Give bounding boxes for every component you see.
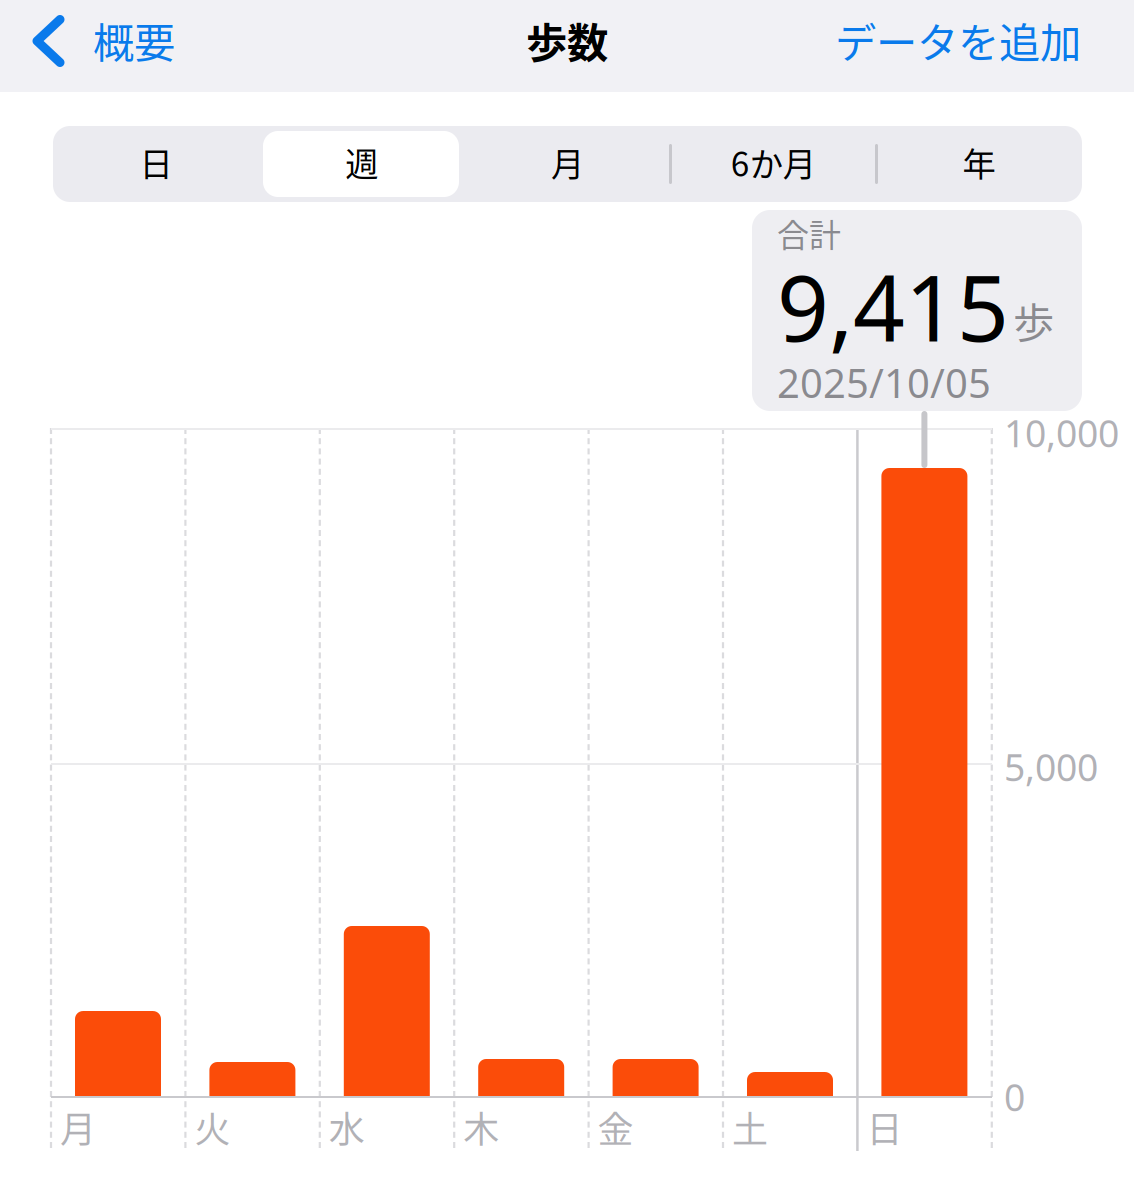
staticText: 月 <box>60 1101 96 1153</box>
staticText: 6か月 <box>731 138 816 186</box>
button[interactable]: 6か月 <box>670 126 876 202</box>
staticText: 土 <box>732 1101 768 1153</box>
button[interactable]: 概要 <box>0 0 420 92</box>
staticText: 日 <box>866 1101 902 1153</box>
staticText: 水 <box>329 1101 365 1153</box>
staticText: 歩 <box>1013 290 1054 350</box>
staticText: 2025/10/05 <box>777 356 991 409</box>
staticText: 週 <box>345 138 378 186</box>
staticText: 0 <box>1004 1072 1025 1122</box>
button[interactable]: 日 <box>53 126 259 202</box>
staticText: 合計 <box>777 210 841 256</box>
staticText: 5,000 <box>1004 742 1098 792</box>
staticText: 10,000 <box>1004 408 1119 458</box>
staticText: 概要 <box>93 10 175 70</box>
staticText: データを追加 <box>835 10 1081 70</box>
staticText: 火 <box>194 1101 230 1153</box>
button[interactable]: 年 <box>876 126 1082 202</box>
staticText: 9,415 <box>777 246 1009 366</box>
staticText: 日 <box>139 138 172 186</box>
staticText: 木 <box>463 1101 499 1153</box>
button[interactable]: 月 <box>465 126 670 202</box>
staticText: 金 <box>598 1101 634 1153</box>
staticText: 歩数 <box>526 10 608 70</box>
staticText: 年 <box>963 138 996 186</box>
staticText: 月 <box>551 138 584 186</box>
button[interactable]: データを追加 <box>0 0 1134 92</box>
button[interactable]: 週 <box>259 126 465 202</box>
